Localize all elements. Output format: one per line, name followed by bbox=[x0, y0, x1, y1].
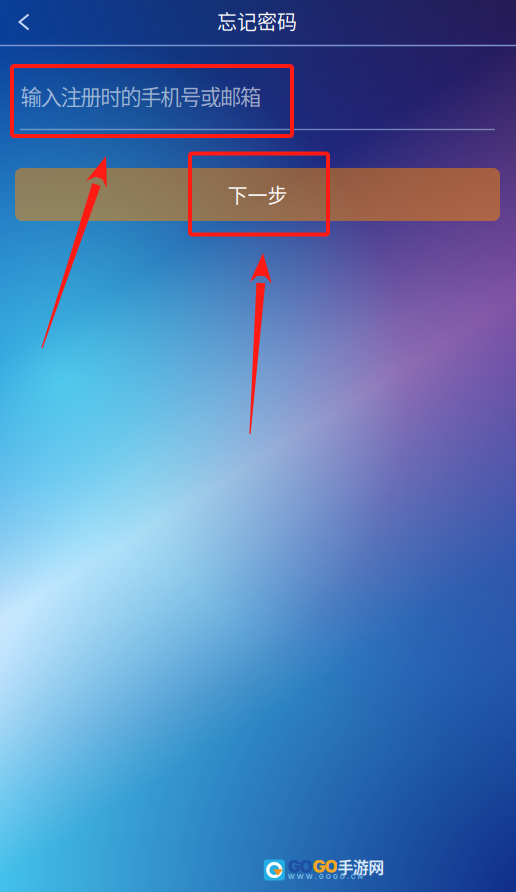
button[interactable]: Back bbox=[2, 0, 46, 44]
staticText: 忘记密码 bbox=[217, 6, 297, 35]
staticText: 手游网 bbox=[337, 855, 384, 878]
button[interactable]: 下一步 bbox=[15, 168, 500, 221]
staticText: 下一步 bbox=[227, 180, 287, 209]
staticText: 输入注册时的手机号或邮箱 bbox=[20, 81, 261, 111]
button[interactable]: 输入注册时的手机号或邮箱 bbox=[20, 58, 495, 134]
staticText: GO bbox=[288, 856, 313, 877]
staticText: GO bbox=[313, 856, 337, 877]
staticText: W W W . G O G O . C N bbox=[288, 872, 363, 881]
